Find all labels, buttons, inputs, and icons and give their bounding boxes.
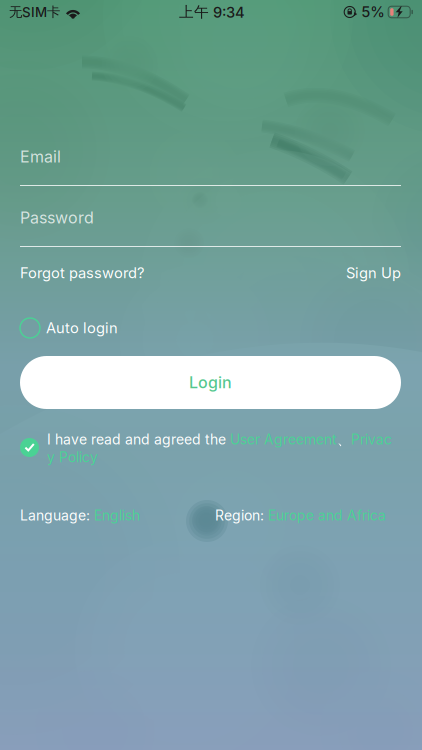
button[interactable]: English (94, 507, 140, 524)
staticText: Europe and Africa (268, 507, 386, 524)
button[interactable]: Login (20, 356, 401, 409)
staticText: 5% (361, 3, 385, 21)
staticText: Forgot password? (20, 264, 144, 282)
staticText: Language: (20, 507, 94, 524)
staticText: 无SIM卡 (9, 4, 60, 20)
button[interactable]: Europe and Africa (268, 507, 386, 524)
staticText: English (94, 507, 140, 524)
staticText: Password (20, 208, 94, 227)
button[interactable]: Sign Up (346, 261, 401, 285)
staticText: 上午 9:34 (179, 3, 245, 21)
staticText: Login (189, 373, 232, 392)
staticText: Region: (215, 507, 268, 524)
button[interactable]: User Agreement and Privacy Policy (47, 431, 395, 466)
staticText: Auto login (46, 319, 118, 337)
button[interactable]: Agree to the User Agreement and Privacy … (20, 438, 39, 457)
button[interactable]: Forgot password? (20, 261, 144, 285)
staticText: Email (20, 147, 61, 166)
staticText: I have read and agreed the User Agreemen… (47, 431, 392, 466)
staticText: Sign Up (346, 264, 401, 282)
button[interactable]: Auto login (20, 317, 118, 339)
